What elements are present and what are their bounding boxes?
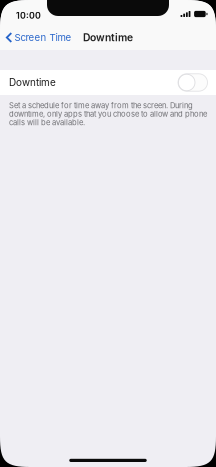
staticText: Downtime bbox=[83, 31, 133, 44]
staticText: Screen Time bbox=[14, 32, 71, 43]
staticText: Downtime bbox=[9, 76, 56, 88]
button[interactable]: Screen Time bbox=[0, 27, 75, 48]
staticText: 10:00 bbox=[16, 10, 41, 21]
button[interactable]: Downtime bbox=[0, 70, 216, 95]
staticText: Set a schedule for time away from the sc… bbox=[9, 101, 207, 127]
